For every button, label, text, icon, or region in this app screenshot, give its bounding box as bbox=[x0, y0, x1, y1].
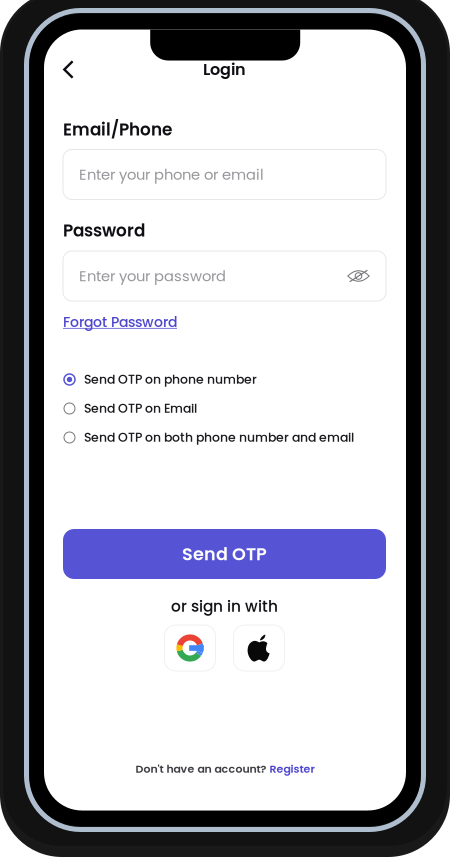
staticText: Send OTP bbox=[182, 542, 267, 566]
staticText: Login bbox=[203, 58, 246, 81]
staticText: Forgot Password bbox=[63, 312, 177, 332]
button[interactable]: Forgot Password bbox=[63, 313, 386, 331]
staticText: Email/Phone bbox=[63, 118, 172, 141]
button[interactable]: Sign in with Google bbox=[164, 625, 215, 671]
staticText: Don't have an account? bbox=[135, 761, 266, 777]
staticText: Send OTP on phone number bbox=[84, 371, 257, 388]
button[interactable]: Send OTP on both phone number and email bbox=[63, 427, 386, 448]
button[interactable]: Send OTP on phone number bbox=[63, 369, 386, 390]
staticText: Register bbox=[269, 761, 314, 777]
staticText: Send OTP on both phone number and email bbox=[84, 429, 354, 446]
staticText: Enter your password bbox=[79, 266, 226, 286]
button[interactable]: Send OTP bbox=[63, 529, 386, 579]
staticText: Password bbox=[63, 219, 145, 242]
staticText: Enter your phone or email bbox=[79, 164, 264, 185]
staticText: or sign in with bbox=[171, 596, 278, 617]
button[interactable]: Back bbox=[49, 50, 87, 88]
button[interactable]: Send OTP on Email bbox=[63, 398, 386, 419]
button[interactable]: Sign in with Apple bbox=[233, 625, 284, 671]
button[interactable]: Show password bbox=[347, 269, 370, 283]
button[interactable]: Don't have an account? bbox=[135, 761, 314, 777]
staticText: Send OTP on Email bbox=[84, 400, 197, 417]
